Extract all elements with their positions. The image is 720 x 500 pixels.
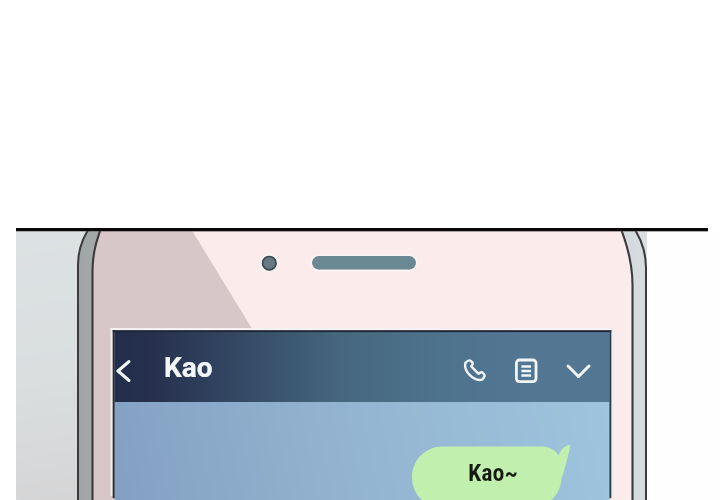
staticText: Kao: [164, 351, 213, 384]
staticText: Kao~: [468, 459, 518, 487]
button[interactable]: Back: [112, 342, 160, 390]
button[interactable]: Call: [452, 348, 497, 393]
button[interactable]: Chat room menu: [504, 348, 549, 393]
button[interactable]: More options: [556, 348, 601, 393]
